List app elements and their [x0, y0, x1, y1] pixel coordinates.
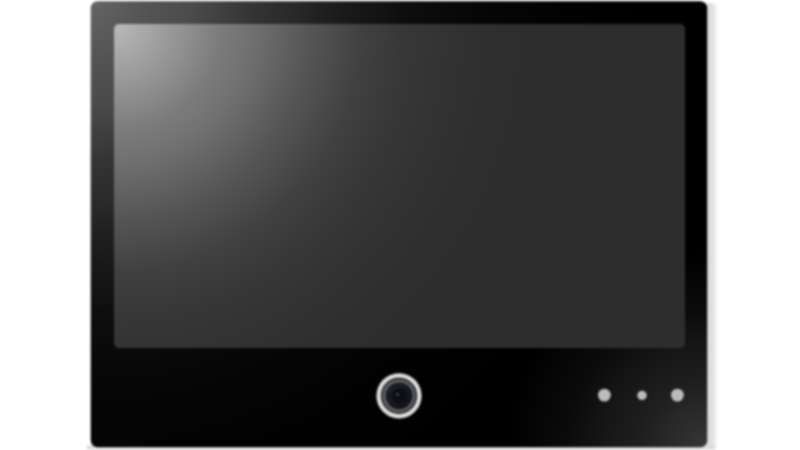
- button[interactable]: Menu button: [671, 389, 684, 402]
- button[interactable]: Status indicator: [637, 391, 646, 400]
- button[interactable]: Camera lens: [376, 373, 421, 418]
- button[interactable]: Power indicator: [598, 389, 611, 402]
- button[interactable]: Display: [114, 24, 685, 348]
